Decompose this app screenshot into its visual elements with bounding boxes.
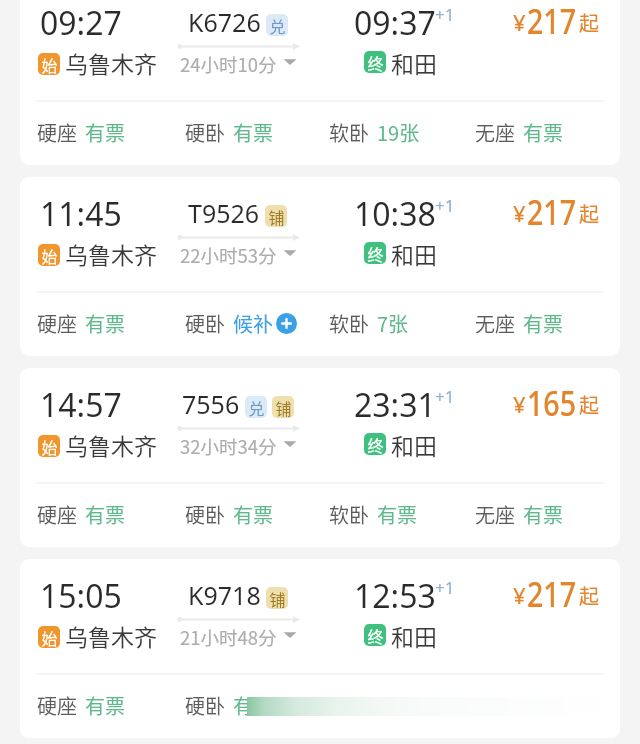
staticText: 和田 <box>391 619 437 652</box>
staticText: 15:05 <box>40 574 122 618</box>
staticText: 有票 <box>85 691 125 720</box>
button[interactable]: 展开详情 <box>283 437 297 451</box>
staticText: K6726 <box>188 5 261 39</box>
button[interactable]: 硬卧 <box>185 118 273 147</box>
staticText: 起 <box>579 199 599 228</box>
staticText: 和田 <box>391 237 437 270</box>
staticText: 有票 <box>85 500 125 529</box>
staticText: 14:57 <box>40 383 122 427</box>
staticText: 11:45 <box>40 192 122 236</box>
staticText: 兑 <box>269 14 286 36</box>
button[interactable]: 无座 <box>475 118 563 147</box>
staticText: 始 <box>41 244 58 266</box>
button[interactable]: 软卧 <box>329 500 417 529</box>
staticText: ¥ <box>513 7 526 37</box>
staticText: 有票 <box>233 691 273 720</box>
staticText: ¥ <box>513 580 526 610</box>
staticText: 硬座 <box>37 691 77 720</box>
staticText: 有票 <box>523 118 563 147</box>
button[interactable]: 软卧 <box>329 118 420 147</box>
button[interactable]: 11:45 <box>20 177 620 356</box>
staticText: +1 <box>435 194 455 217</box>
staticText: 217 <box>527 189 577 225</box>
staticText: 铺 <box>269 587 286 609</box>
staticText: 和田 <box>391 46 437 79</box>
staticText: 终 <box>367 624 384 646</box>
staticText: 24小时10分 <box>180 51 277 78</box>
staticText: 终 <box>367 433 384 455</box>
staticText: ¥ <box>513 198 526 228</box>
staticText: 12:53 <box>354 574 436 618</box>
staticText: 起 <box>579 581 599 610</box>
button[interactable]: 硬座 <box>37 118 125 147</box>
button[interactable]: 15:05 <box>20 559 620 738</box>
other: 添加候补 <box>276 313 297 334</box>
staticText: 终 <box>367 242 384 264</box>
button[interactable]: 硬座 <box>37 309 125 338</box>
button[interactable]: 软卧 <box>329 309 409 338</box>
staticText: 候补 <box>233 309 273 338</box>
button[interactable]: 展开详情 <box>283 628 297 642</box>
staticText: 无座 <box>475 500 515 529</box>
button[interactable]: 硬座 <box>37 500 125 529</box>
staticText: 硬卧 <box>185 691 225 720</box>
staticText: 有票 <box>523 500 563 529</box>
staticText: 有票 <box>523 309 563 338</box>
staticText: 09:37 <box>354 1 436 45</box>
button[interactable]: 硬座 <box>37 691 125 720</box>
button[interactable]: 硬卧 <box>185 500 273 529</box>
button[interactable]: 硬卧 <box>185 309 297 338</box>
staticText: 起 <box>579 8 599 37</box>
staticText: 乌鲁木齐 <box>65 237 157 270</box>
staticText: 软卧 <box>329 500 369 529</box>
staticText: 10:38 <box>354 192 436 236</box>
staticText: 有票 <box>377 500 417 529</box>
button[interactable]: 无座 <box>475 309 563 338</box>
staticText: T9526 <box>188 196 260 230</box>
staticText: 乌鲁木齐 <box>65 619 157 652</box>
button[interactable]: 无座 <box>475 500 563 529</box>
staticText: 乌鲁木齐 <box>65 46 157 79</box>
staticText: 有票 <box>233 118 273 147</box>
staticText: 有票 <box>377 691 417 720</box>
staticText: ¥ <box>513 389 526 419</box>
staticText: 起 <box>579 390 599 419</box>
button[interactable]: 展开详情 <box>283 55 297 69</box>
staticText: 217 <box>527 0 577 34</box>
staticText: +1 <box>435 3 455 26</box>
staticText: 21小时48分 <box>180 624 277 651</box>
staticText: 铺 <box>268 205 285 227</box>
staticText: 乌鲁木齐 <box>65 428 157 461</box>
staticText: 硬卧 <box>185 500 225 529</box>
button[interactable]: 展开详情 <box>283 246 297 260</box>
staticText: +1 <box>435 385 455 408</box>
staticText: 无座 <box>475 309 515 338</box>
button[interactable]: 硬卧 <box>185 691 273 720</box>
staticText: 软卧 <box>329 118 369 147</box>
staticText: 有票 <box>233 500 273 529</box>
staticText: 兑 <box>248 396 265 418</box>
staticText: 7556 <box>182 387 240 421</box>
staticText: 和田 <box>391 428 437 461</box>
staticText: 始 <box>41 626 58 648</box>
staticText: 终 <box>367 51 384 73</box>
staticText: 硬座 <box>37 118 77 147</box>
staticText: 硬座 <box>37 500 77 529</box>
staticText: 有票 <box>85 118 125 147</box>
staticText: 硬卧 <box>185 309 225 338</box>
button[interactable]: 09:27 <box>20 0 620 165</box>
staticText: +1 <box>435 576 455 599</box>
button[interactable]: 软卧 <box>329 691 417 720</box>
staticText: 32小时34分 <box>180 433 277 460</box>
staticText: 有票 <box>85 309 125 338</box>
staticText: 软卧 <box>329 691 369 720</box>
staticText: K9718 <box>188 578 261 612</box>
staticText: 铺 <box>275 396 292 418</box>
staticText: 23:31 <box>354 383 436 427</box>
staticText: 19张 <box>377 118 420 147</box>
button[interactable]: 14:57 <box>20 368 620 547</box>
staticText: 硬卧 <box>185 118 225 147</box>
